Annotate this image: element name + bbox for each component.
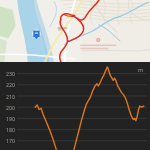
button[interactable]: Route map [0, 0, 150, 62]
button[interactable]: Elevation chart [0, 62, 150, 150]
